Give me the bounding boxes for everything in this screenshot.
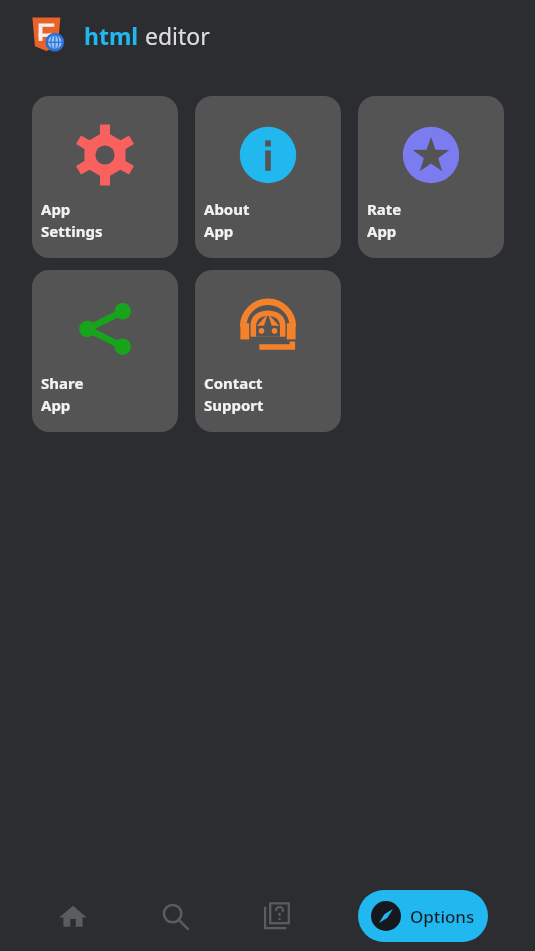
- staticText: Options: [410, 905, 475, 928]
- button[interactable]: Home: [43, 886, 103, 946]
- staticText: Support: [204, 395, 264, 415]
- button[interactable]: Options: [358, 890, 488, 942]
- staticText: Settings: [41, 221, 103, 241]
- staticText: editor: [139, 20, 210, 51]
- button[interactable]: Contact: [195, 270, 341, 432]
- button[interactable]: App: [32, 96, 178, 258]
- staticText: App: [204, 221, 234, 241]
- button[interactable]: Share: [32, 270, 178, 432]
- staticText: Contact: [204, 373, 263, 393]
- staticText: Rate: [367, 199, 402, 219]
- staticText: App: [41, 199, 71, 219]
- staticText: App: [367, 221, 397, 241]
- button[interactable]: About: [195, 96, 341, 258]
- button[interactable]: Rate: [358, 96, 504, 258]
- staticText: Share: [41, 373, 84, 393]
- button[interactable]: Search: [145, 886, 205, 946]
- staticText: App: [41, 395, 71, 415]
- staticText: About: [204, 199, 250, 219]
- button[interactable]: Help: [248, 886, 308, 946]
- staticText: html: [84, 20, 139, 51]
